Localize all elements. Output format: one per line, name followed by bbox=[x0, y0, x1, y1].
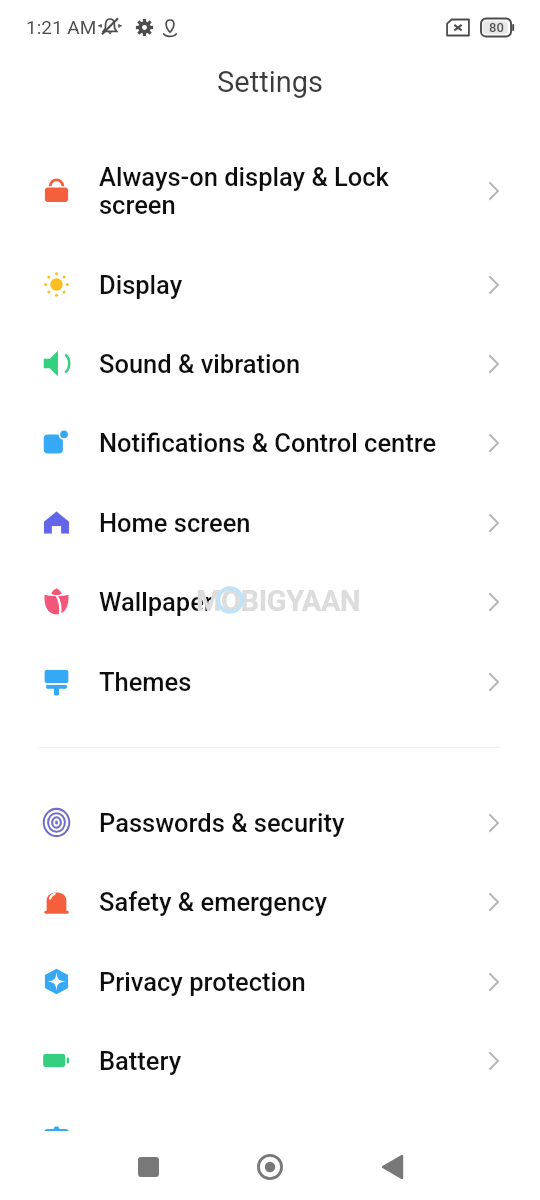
button[interactable]: Battery bbox=[0, 1021, 540, 1100]
staticText: Passwords & security bbox=[99, 808, 451, 838]
staticText: 80 bbox=[489, 20, 504, 35]
button[interactable]: Privacy protection bbox=[0, 942, 540, 1021]
staticText: Settings bbox=[217, 65, 323, 99]
staticText: Themes bbox=[99, 667, 451, 697]
staticText: 1:21 AM bbox=[26, 16, 97, 38]
button[interactable]: Themes bbox=[0, 642, 540, 721]
button[interactable]: Back bbox=[342, 1131, 442, 1200]
button[interactable]: Home bbox=[220, 1131, 320, 1200]
button[interactable]: Notifications & Control centre bbox=[0, 403, 540, 482]
button[interactable]: Wallpaper bbox=[0, 562, 540, 641]
button[interactable]: Always-on display & Lock screen bbox=[0, 137, 540, 245]
staticText: Always-on display & Lock screen bbox=[99, 162, 451, 220]
staticText: Battery bbox=[99, 1046, 451, 1076]
staticText: Safety & emergency bbox=[99, 887, 451, 917]
staticText: Sound & vibration bbox=[99, 349, 451, 379]
staticText: Notifications & Control centre bbox=[99, 428, 451, 458]
button[interactable]: Additional settings bbox=[0, 1101, 540, 1180]
staticText: Wallpaper bbox=[99, 587, 451, 617]
button[interactable]: Passwords & security bbox=[0, 783, 540, 862]
staticText: Display bbox=[99, 270, 451, 300]
button[interactable]: Display bbox=[0, 245, 540, 324]
staticText: MOBIGYAAN bbox=[196, 584, 361, 618]
staticText: Additional settings bbox=[99, 1126, 451, 1156]
button[interactable]: Sound & vibration bbox=[0, 324, 540, 403]
button[interactable]: Recents bbox=[98, 1131, 198, 1200]
button[interactable]: Safety & emergency bbox=[0, 862, 540, 941]
staticText: Privacy protection bbox=[99, 967, 451, 997]
button[interactable]: Home screen bbox=[0, 483, 540, 562]
staticText: Home screen bbox=[99, 508, 451, 538]
